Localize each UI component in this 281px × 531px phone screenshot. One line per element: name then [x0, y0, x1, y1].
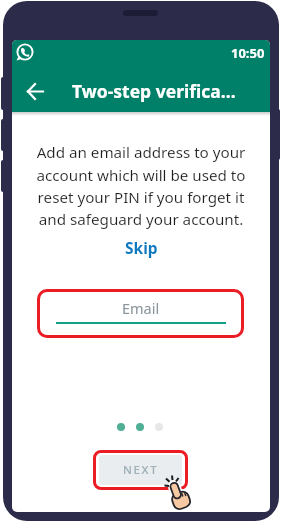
staticText: Add an email address to your account whi…: [36, 142, 246, 229]
staticText: NEXT: [123, 462, 159, 478]
staticText: Email: [122, 298, 160, 318]
button[interactable]: Skip: [125, 237, 158, 258]
button[interactable]: NEXT: [99, 455, 182, 485]
staticText: 10:50: [231, 44, 265, 62]
button[interactable]: [12, 76, 58, 106]
staticText: Skip: [125, 237, 158, 258]
button[interactable]: Email: [37, 289, 244, 338]
staticText: Two-step verifica…: [72, 79, 236, 103]
